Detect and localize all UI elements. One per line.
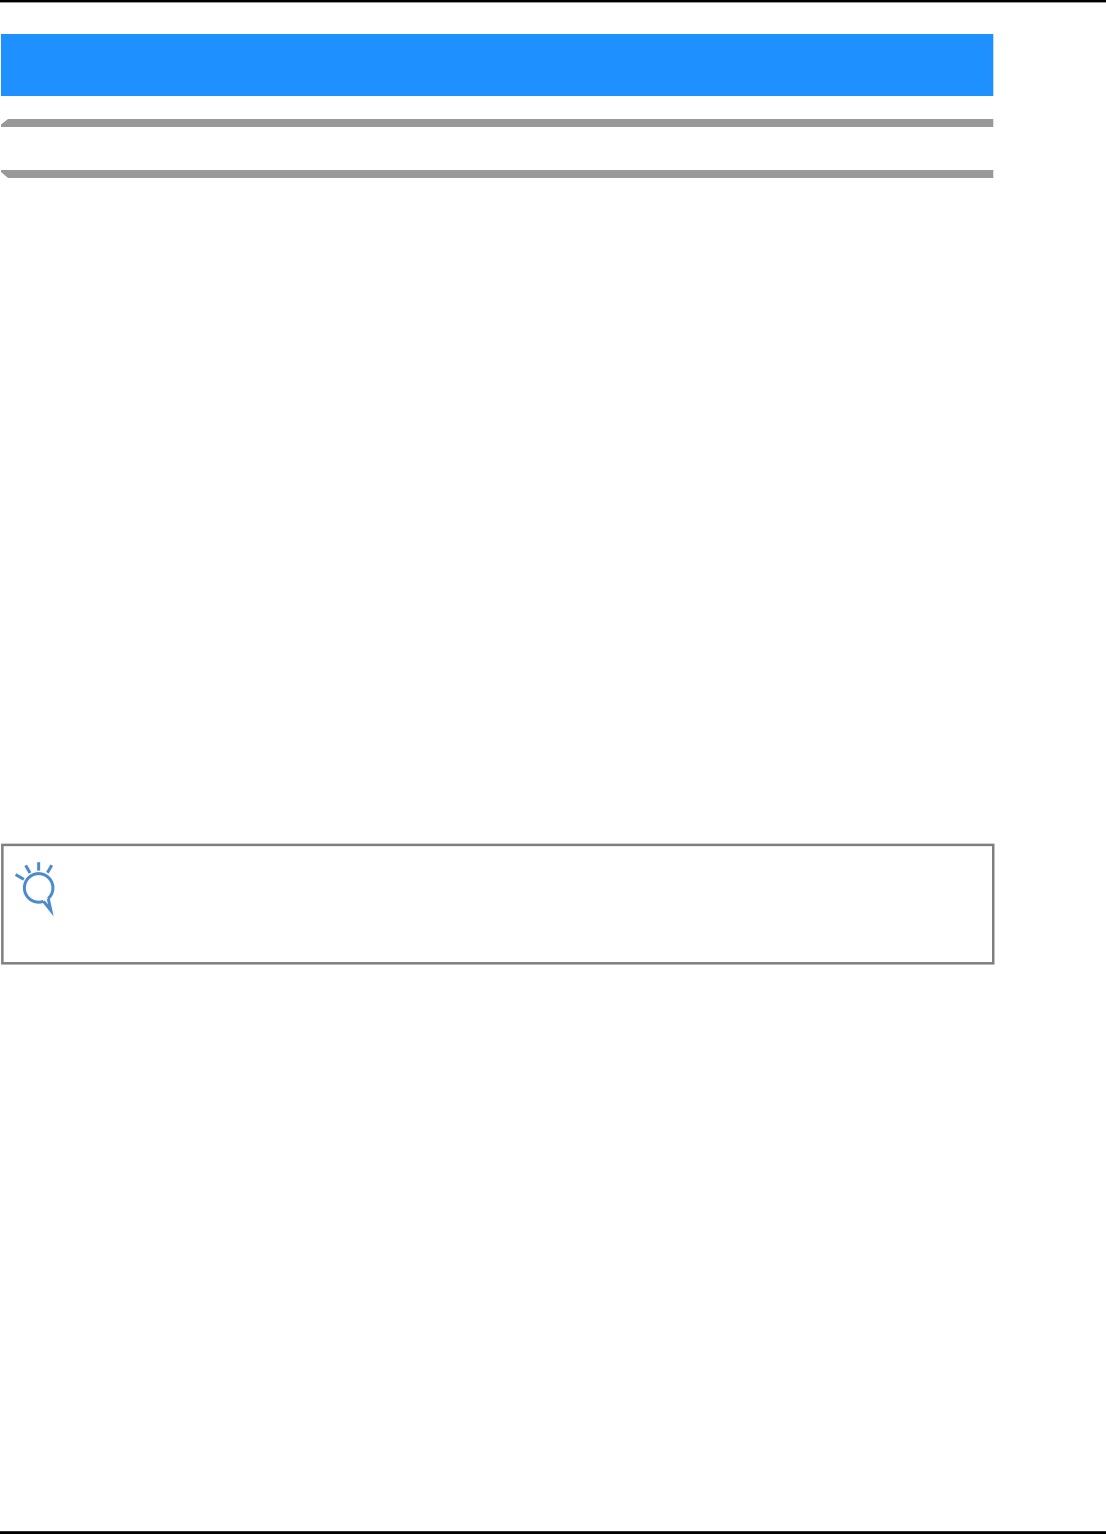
button[interactable]: Tip <box>2 845 993 963</box>
